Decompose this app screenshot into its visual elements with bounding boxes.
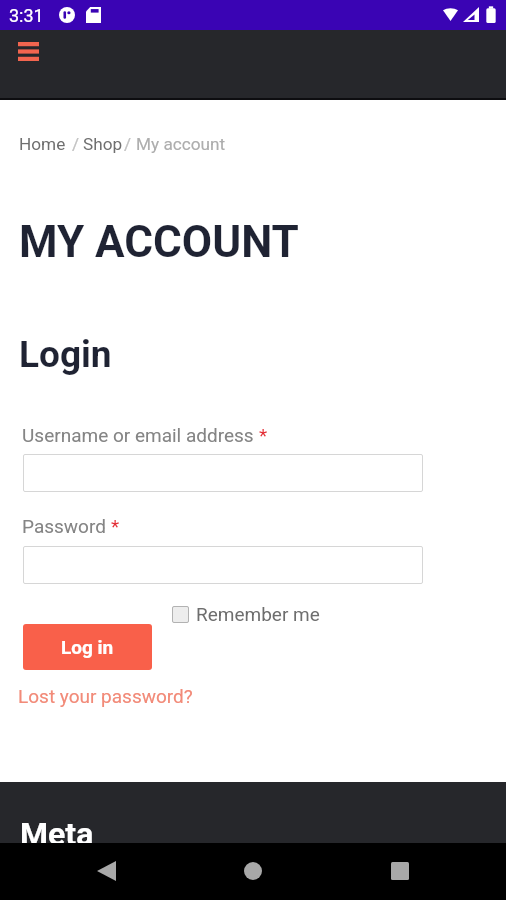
button[interactable]: Home <box>19 134 66 154</box>
button[interactable]: Log in <box>23 624 152 670</box>
staticText: / <box>124 134 132 154</box>
button[interactable]: Username or email address <box>23 454 423 492</box>
button[interactable]: Password <box>23 546 423 584</box>
staticText: My account <box>136 134 226 154</box>
staticText: Log in <box>61 636 114 658</box>
staticText: Remember me <box>196 603 320 625</box>
staticText: Meta <box>20 815 94 853</box>
staticText: Username or email address <box>22 424 259 446</box>
button[interactable]: Remember me <box>172 603 320 625</box>
button[interactable]: Lost your password? <box>18 685 193 707</box>
button[interactable]: Open menu <box>6 29 50 73</box>
staticText: Password <box>22 515 111 537</box>
button[interactable]: Recent apps <box>376 847 424 895</box>
staticText: MY ACCOUNT <box>19 216 299 268</box>
staticText: * <box>111 515 120 537</box>
button[interactable]: Shop <box>83 134 123 154</box>
staticText: Login <box>19 333 112 376</box>
staticText: * <box>259 424 268 446</box>
button[interactable]: Back <box>82 847 130 895</box>
staticText: 3:31 <box>9 5 44 26</box>
button[interactable]: Home <box>229 847 277 895</box>
staticText: / <box>72 134 80 154</box>
